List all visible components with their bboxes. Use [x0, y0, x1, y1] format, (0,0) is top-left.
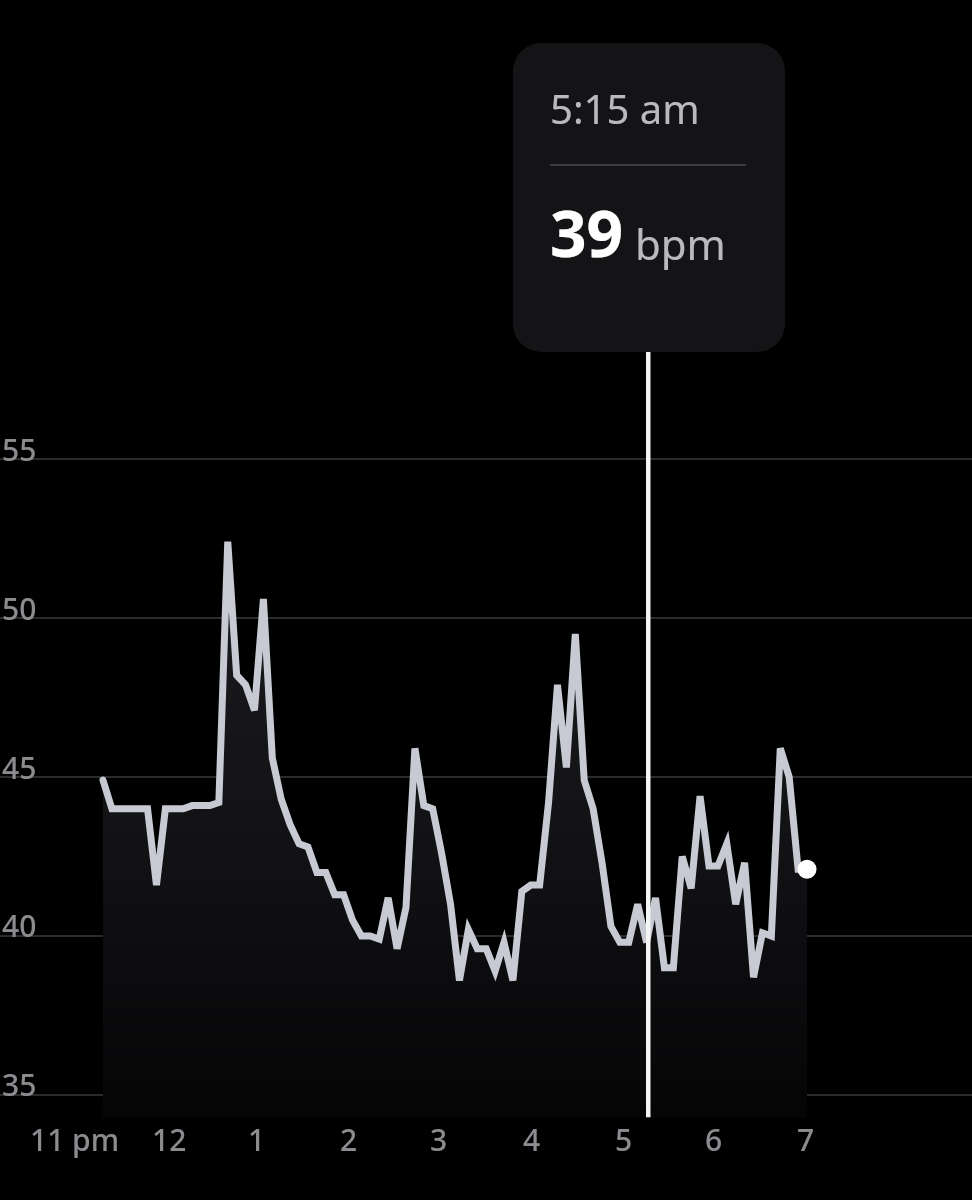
staticText: 55 [2, 429, 37, 470]
staticText: 40 [2, 905, 37, 946]
staticText: 1 [248, 1119, 266, 1160]
staticText: 3 [430, 1119, 448, 1160]
staticText: 2 [340, 1119, 358, 1160]
staticText: 11 pm [30, 1119, 120, 1160]
staticText: 4 [523, 1119, 541, 1160]
staticText: 12 [152, 1119, 187, 1160]
staticText: 35 [2, 1064, 37, 1105]
staticText: bpm [624, 215, 726, 272]
staticText: 39 [550, 189, 624, 276]
staticText: 6 [705, 1119, 723, 1160]
staticText: 5:15 am [550, 81, 700, 135]
staticText: 7 [797, 1119, 815, 1160]
staticText: 5 [615, 1119, 633, 1160]
staticText: 45 [2, 747, 37, 788]
staticText: 50 [2, 588, 37, 629]
button[interactable]: 5:15 am, 39 bpm [513, 43, 785, 352]
